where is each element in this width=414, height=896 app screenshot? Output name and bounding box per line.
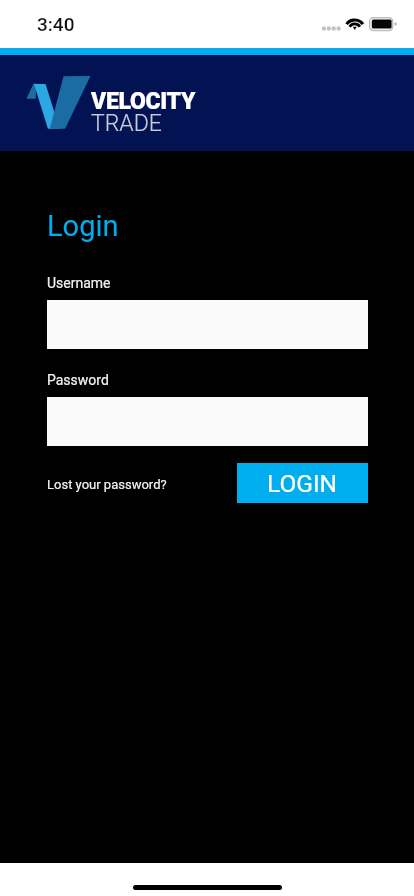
staticText: Login (47, 209, 119, 243)
button[interactable]: LOGIN (237, 463, 368, 503)
staticText: LOGIN (267, 469, 338, 498)
button[interactable]: Lost your password? (47, 477, 167, 492)
staticText: Username (47, 275, 111, 291)
staticText: TRADE (91, 110, 162, 137)
staticText: Password (47, 372, 109, 388)
staticText: VELOCITY (91, 88, 196, 115)
staticText: 3:40 (37, 13, 75, 35)
other: Status icons (318, 8, 400, 36)
